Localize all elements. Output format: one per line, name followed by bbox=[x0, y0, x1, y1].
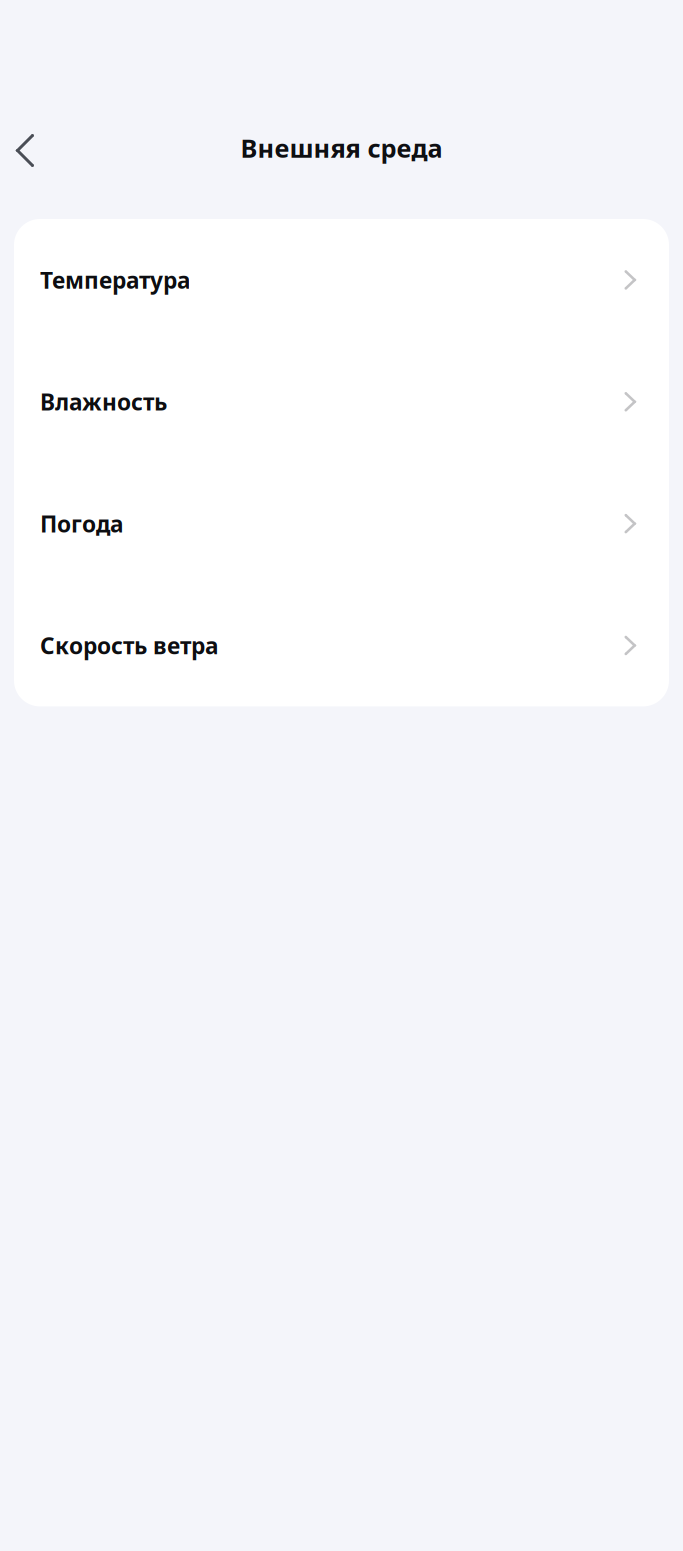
staticText: Влажность bbox=[40, 387, 167, 417]
staticText: Внешняя среда bbox=[240, 131, 442, 165]
button[interactable]: Погода bbox=[14, 463, 669, 584]
button[interactable]: Back bbox=[0, 119, 49, 179]
staticText: Погода bbox=[40, 509, 124, 539]
button[interactable]: Скорость ветра bbox=[14, 584, 669, 706]
staticText: Температура bbox=[40, 265, 191, 295]
button[interactable]: Влажность bbox=[14, 341, 669, 463]
button[interactable]: Температура bbox=[14, 219, 669, 341]
staticText: Скорость ветра bbox=[40, 630, 219, 660]
